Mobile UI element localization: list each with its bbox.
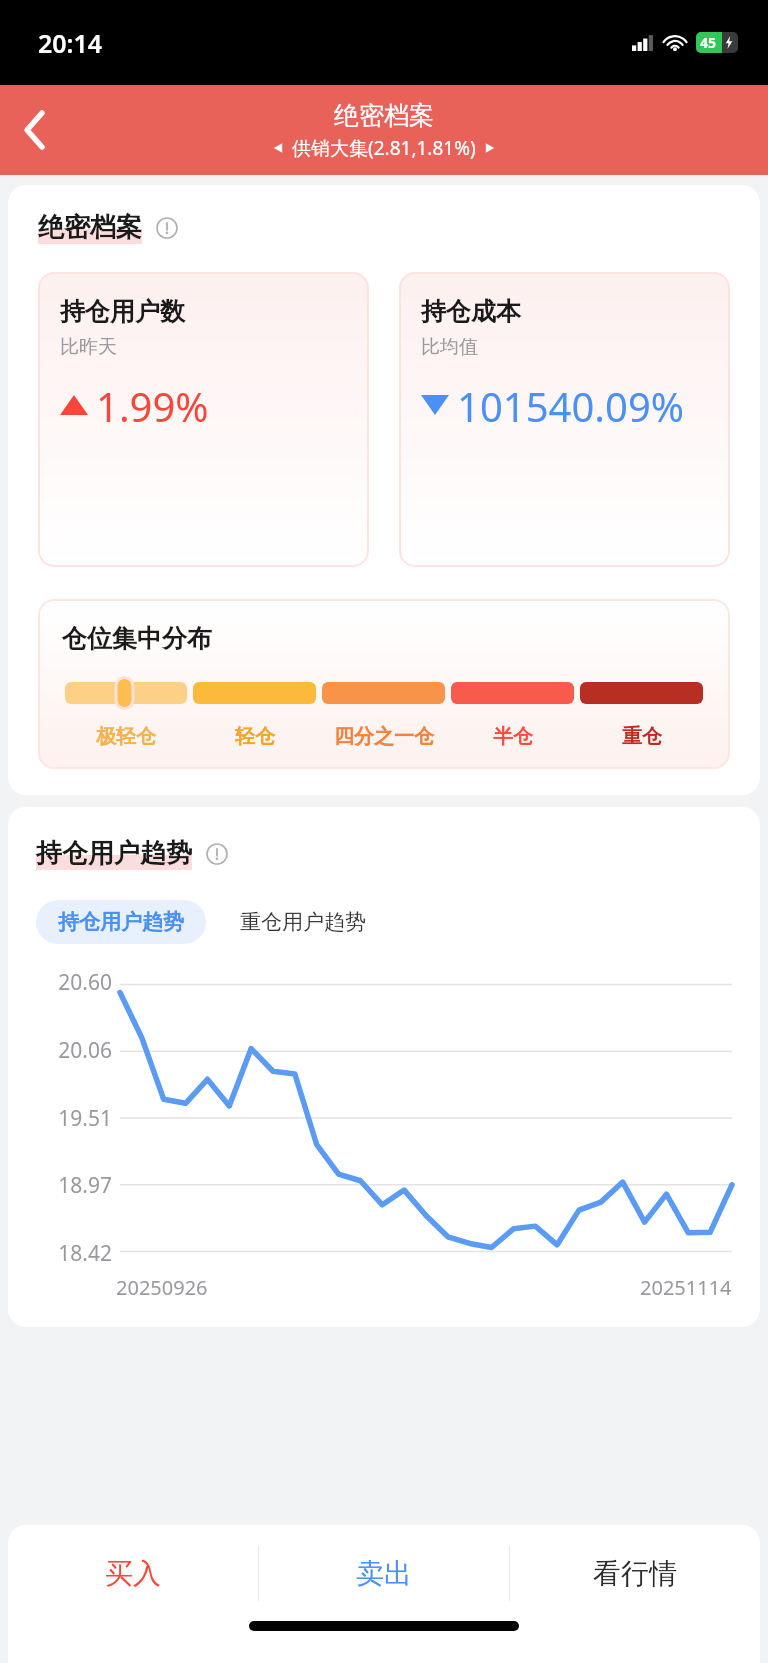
staticText: 看行情 xyxy=(593,1556,677,1591)
button[interactable]: 看行情 xyxy=(510,1525,760,1621)
staticText: 供销大集(2.81,1.81%) xyxy=(292,135,476,161)
staticText: 比昨天 xyxy=(60,335,117,359)
staticText: 18.42 xyxy=(36,1239,112,1268)
staticText: 19.51 xyxy=(36,1104,112,1133)
staticText: 持仓用户数 xyxy=(60,296,185,327)
staticText: 绝密档案 xyxy=(334,100,434,131)
staticText: 仓位集中分布 xyxy=(62,623,212,654)
staticText: 买入 xyxy=(105,1556,161,1591)
button[interactable]: 持仓用户数 xyxy=(38,272,369,567)
button[interactable]: 卖出 xyxy=(259,1525,509,1621)
staticText: 极轻仓 xyxy=(96,724,156,749)
staticText: 半仓 xyxy=(493,724,533,749)
staticText: 持仓成本 xyxy=(421,296,521,327)
staticText: 卖出 xyxy=(356,1556,412,1591)
staticText: 20250926 xyxy=(116,1274,208,1301)
staticText: 比均值 xyxy=(421,335,478,359)
button[interactable]: Info xyxy=(156,217,178,239)
staticText: 重仓用户趋势 xyxy=(240,909,366,935)
staticText: 绝密档案 xyxy=(38,211,142,244)
button[interactable]: 重仓用户趋势 xyxy=(232,900,374,944)
staticText: 1.99% xyxy=(96,379,209,433)
staticText: 持仓用户趋势 xyxy=(36,837,192,870)
staticText: 20.60 xyxy=(36,968,112,997)
staticText: 45 xyxy=(700,33,717,52)
button[interactable]: Back xyxy=(0,95,70,165)
button[interactable]: 持仓用户趋势 xyxy=(36,900,206,944)
button[interactable]: Info xyxy=(206,843,228,865)
staticText: 20:14 xyxy=(38,26,103,60)
staticText: 重仓 xyxy=(622,724,662,749)
staticText: 轻仓 xyxy=(235,724,275,749)
staticText: 持仓用户趋势 xyxy=(58,909,184,935)
staticText: 18.97 xyxy=(36,1171,112,1200)
staticText: 101540.09% xyxy=(457,379,684,433)
button[interactable]: 持仓成本 xyxy=(399,272,730,567)
button[interactable]: 买入 xyxy=(8,1525,258,1621)
staticText: 四分之一仓 xyxy=(334,724,434,749)
staticText: 20251114 xyxy=(640,1274,732,1301)
staticText: 20.06 xyxy=(36,1036,112,1065)
